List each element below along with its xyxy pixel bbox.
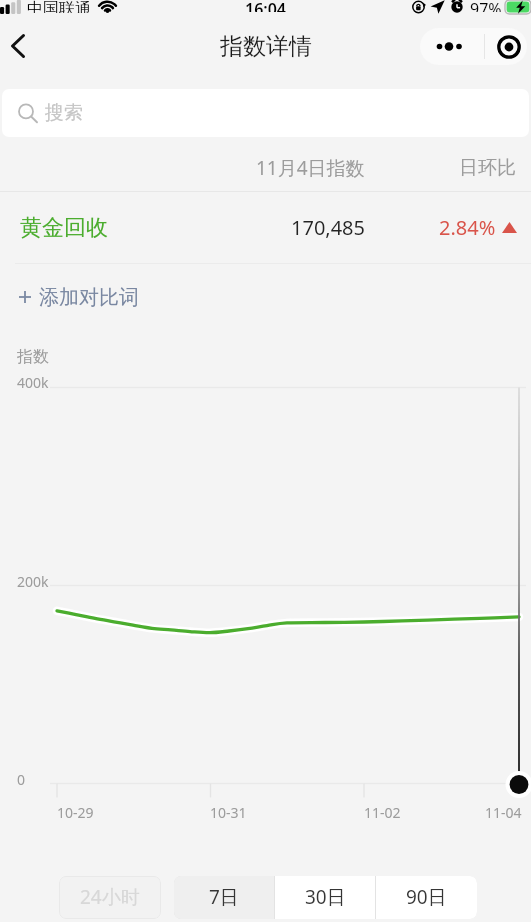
staticText: 24小时	[80, 884, 140, 910]
staticText: 200k	[17, 572, 49, 591]
staticText: 11-02	[364, 803, 401, 822]
staticText: 90日	[406, 884, 447, 910]
staticText: 2.84%	[439, 214, 496, 241]
staticText: 16:04	[245, 0, 287, 12]
staticText: 指数详情	[220, 32, 312, 61]
button[interactable]: 黄金回收	[0, 192, 531, 263]
staticText: 97%	[470, 0, 502, 12]
staticText: 日环比	[459, 156, 516, 180]
button[interactable]: 搜索	[2, 89, 529, 137]
staticText: 10-31	[210, 803, 247, 822]
staticText: 400k	[17, 373, 49, 392]
staticText: 10-29	[57, 803, 94, 822]
button[interactable]: Close mini program	[490, 28, 527, 65]
button[interactable]: Back	[0, 28, 36, 64]
staticText: 指数	[17, 347, 49, 367]
staticText: 中国联通	[27, 0, 91, 13]
staticText: 0	[17, 770, 26, 789]
button[interactable]: More options	[420, 28, 478, 65]
staticText: 黄金回收	[20, 214, 108, 242]
staticText: 30日	[305, 884, 346, 910]
staticText: 搜索	[45, 101, 83, 125]
button[interactable]: 24小时	[59, 876, 161, 919]
staticText: 170,485	[291, 214, 365, 241]
staticText: 11-04	[485, 803, 522, 822]
button[interactable]: 30日	[275, 876, 375, 919]
staticText: 添加对比词	[39, 285, 139, 310]
staticText: 11月4日指数	[256, 155, 365, 181]
button[interactable]: 7日	[174, 876, 274, 919]
staticText: 7日	[209, 884, 239, 910]
button[interactable]: 添加对比词	[0, 268, 531, 326]
button[interactable]: 90日	[376, 876, 477, 919]
